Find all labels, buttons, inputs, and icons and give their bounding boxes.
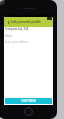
staticText: Techpoint Ltd, 234 (5, 27, 29, 31)
other: Home (24, 107, 33, 116)
staticText: Name (5, 34, 13, 38)
staticText: CONTINUE (21, 99, 36, 103)
button[interactable]: CONTINUE (5, 98, 52, 104)
staticText: Edit personal profile (11, 20, 41, 24)
button[interactable]: Back (5, 19, 12, 26)
button[interactable]: Save (47, 17, 52, 20)
staticText: Enter your address (5, 40, 29, 44)
